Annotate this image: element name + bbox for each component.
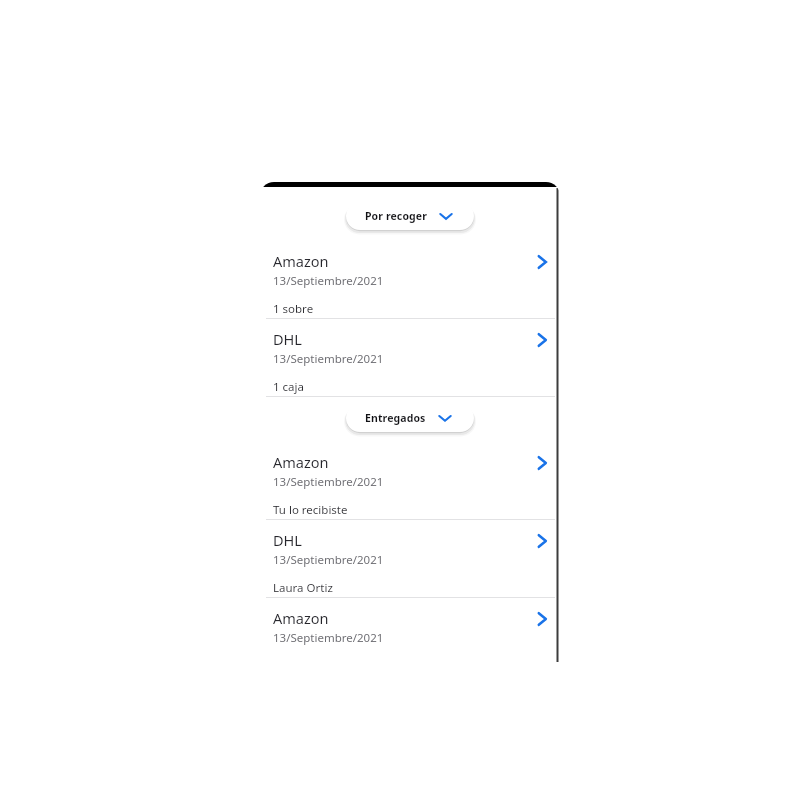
- staticText: 1 caja: [273, 379, 304, 395]
- staticText: Laura Ortiz: [273, 580, 333, 596]
- staticText: 1 sobre: [273, 301, 314, 317]
- staticText: Entregados: [365, 411, 426, 425]
- button[interactable]: Ver detalle de Amazon: [529, 450, 555, 476]
- button[interactable]: Ver detalle de Amazon: [529, 249, 555, 275]
- staticText: 13/Septiembre/2021: [273, 273, 384, 289]
- staticText: Amazon: [273, 251, 329, 271]
- button[interactable]: Amazon: [260, 598, 560, 662]
- staticText: Tu lo recibiste: [273, 502, 348, 518]
- staticText: DHL: [273, 329, 302, 349]
- button[interactable]: DHL: [260, 520, 560, 597]
- staticText: 13/Septiembre/2021: [273, 474, 384, 490]
- staticText: Por recoger: [365, 209, 427, 223]
- staticText: 13/Septiembre/2021: [273, 351, 384, 367]
- staticText: Amazon: [273, 452, 329, 472]
- button[interactable]: Ver detalle de DHL: [529, 327, 555, 353]
- staticText: DHL: [273, 530, 302, 550]
- button[interactable]: Por recoger: [346, 202, 474, 230]
- button[interactable]: Amazon: [260, 442, 560, 519]
- button[interactable]: Amazon: [260, 241, 560, 318]
- staticText: Amazon: [273, 608, 329, 628]
- button[interactable]: DHL: [260, 319, 560, 396]
- button[interactable]: Ver detalle de Amazon: [529, 606, 555, 632]
- staticText: 13/Septiembre/2021: [273, 552, 384, 568]
- staticText: 13/Septiembre/2021: [273, 630, 384, 646]
- button[interactable]: Ver detalle de DHL: [529, 528, 555, 554]
- button[interactable]: Entregados: [346, 404, 474, 432]
